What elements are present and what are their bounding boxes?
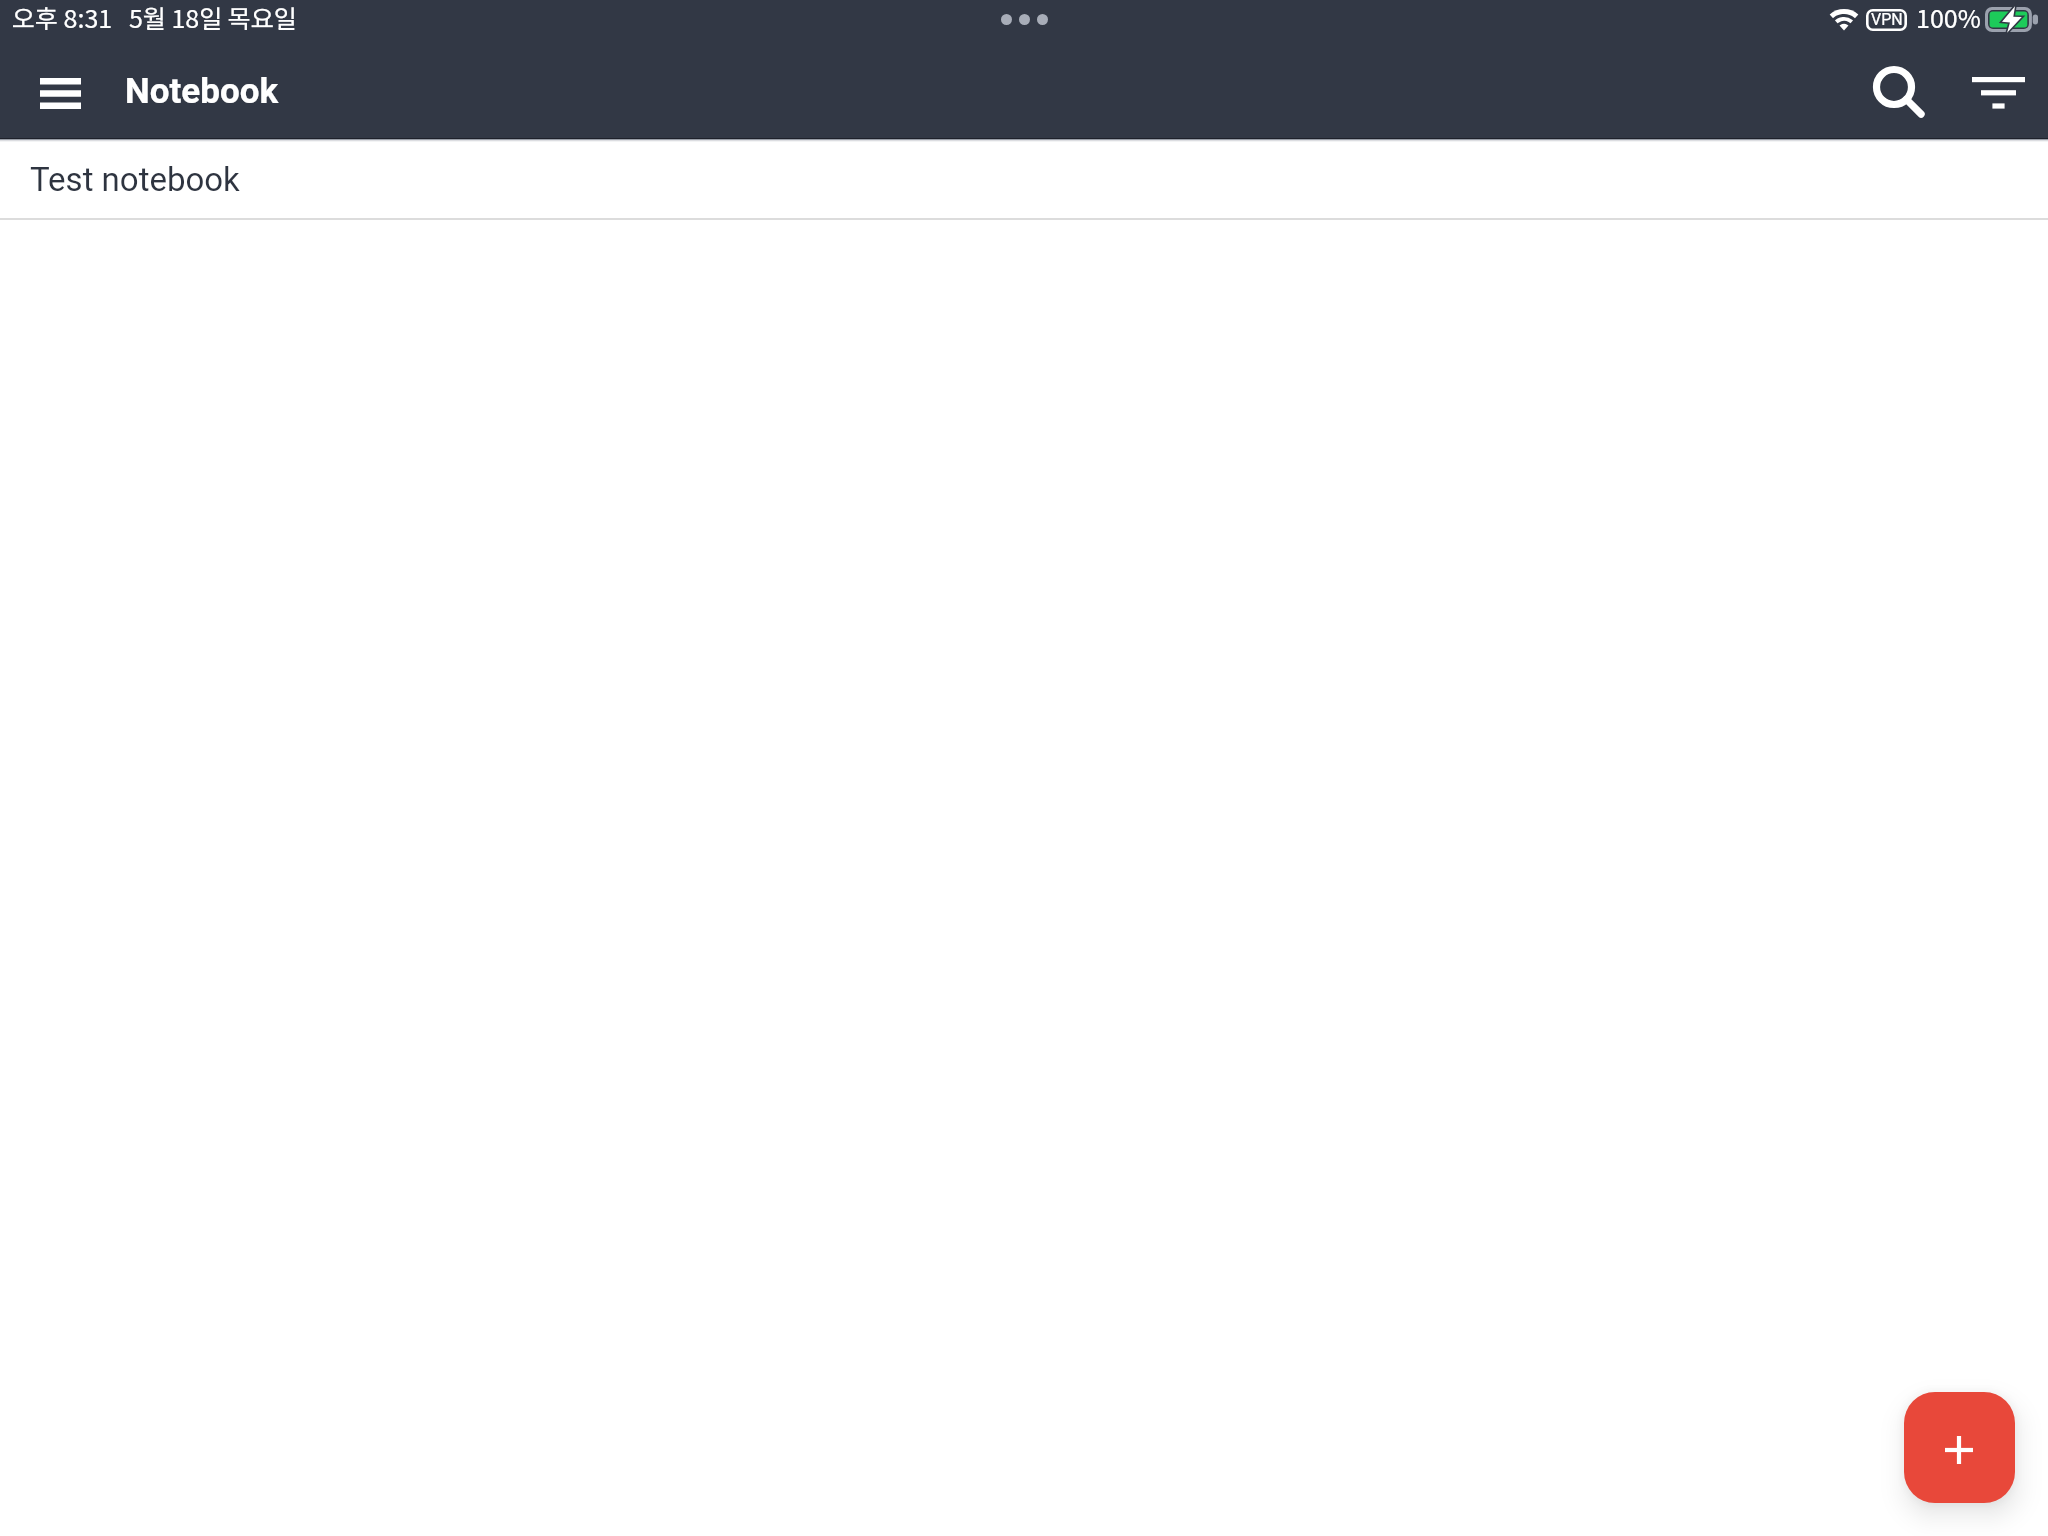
button[interactable]: Add note [1904,1392,2015,1503]
button[interactable]: Test notebook [0,139,2048,218]
staticText: VPN [1871,10,1903,29]
staticText: 오후 8:31 5월 18일 목요일 [12,0,297,35]
button[interactable]: Sort [1952,47,2044,139]
button[interactable]: Search [1853,47,1945,139]
staticText: 100% [1916,0,1981,35]
staticText: Test notebook [30,160,240,199]
button[interactable]: Open navigation menu [14,47,106,139]
staticText: Notebook [125,71,279,112]
